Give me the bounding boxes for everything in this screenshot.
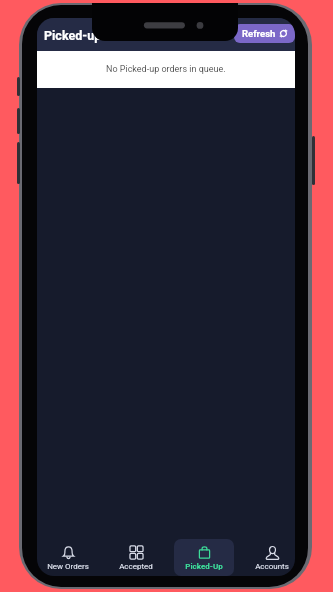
staticText: Accepted [119,562,153,571]
staticText: New Orders [47,562,89,571]
staticText: No Picked-up orders in queue. [106,64,226,75]
button[interactable]: Picked-Up [174,539,234,576]
staticText: Refresh [242,28,276,39]
staticText: Picked-up Orders [44,28,143,43]
button[interactable]: Accepted [106,539,166,576]
button[interactable]: Accounts [242,539,295,576]
button[interactable]: New Orders [38,539,98,576]
staticText: Accounts [255,562,289,571]
staticText: Picked-Up [185,562,223,571]
button[interactable]: Refresh [234,24,295,43]
